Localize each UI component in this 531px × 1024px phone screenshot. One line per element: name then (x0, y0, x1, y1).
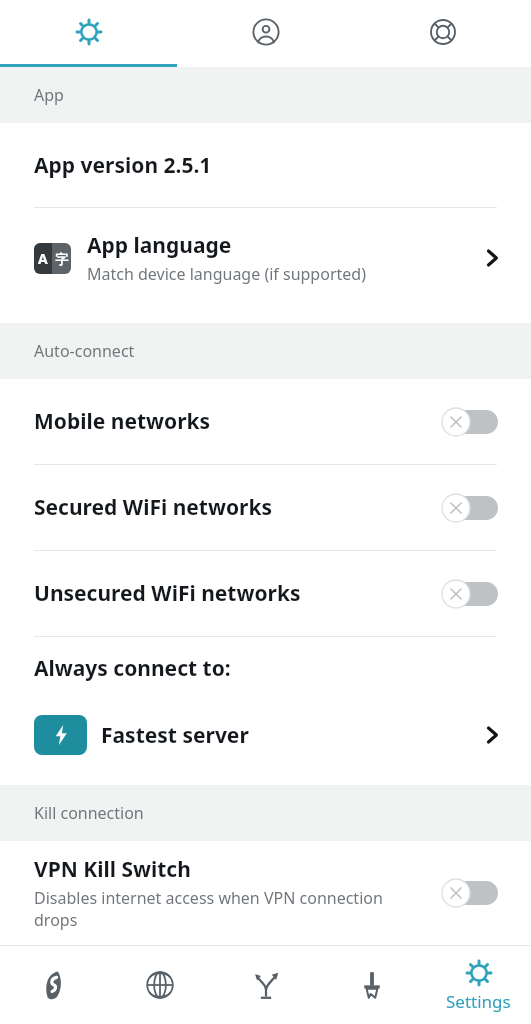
button[interactable]: Mobile networks (0, 379, 531, 464)
staticText: App language (87, 231, 232, 260)
staticText: Kill connection (34, 802, 144, 824)
staticText: Settings (446, 990, 511, 1013)
staticText: Disables internet access when VPN connec… (34, 887, 422, 931)
staticText: Auto-connect (34, 340, 135, 362)
staticText: Fastest server (101, 721, 481, 750)
button[interactable]: Settings tab (0, 0, 177, 64)
button[interactable]: Toggle (442, 879, 498, 907)
staticText: Secured WiFi networks (34, 493, 442, 522)
button[interactable]: App version 2.5.1 (0, 123, 531, 207)
staticText: Always connect to: (34, 654, 231, 683)
staticText: Mobile networks (34, 407, 442, 436)
button[interactable]: Alerts (319, 946, 425, 1024)
button[interactable]: Toggle (442, 408, 498, 436)
button[interactable]: Unsecured WiFi networks (0, 551, 531, 636)
staticText: App version 2.5.1 (34, 151, 212, 180)
staticText: VPN Kill Switch (34, 855, 191, 884)
button[interactable]: VPN Kill Switch (0, 841, 531, 945)
button[interactable]: Fastest server (0, 699, 531, 771)
button[interactable]: Account tab (177, 0, 354, 64)
button[interactable]: Split tunneling (213, 946, 319, 1024)
staticText: A (38, 249, 48, 268)
button[interactable]: A (0, 208, 531, 308)
button[interactable]: Locations (107, 946, 213, 1024)
button[interactable]: Secured WiFi networks (0, 465, 531, 550)
staticText: App (34, 84, 64, 106)
staticText: 字 (55, 251, 68, 267)
button[interactable]: Settings (425, 946, 531, 1024)
staticText: Unsecured WiFi networks (34, 579, 442, 608)
button[interactable]: Toggle (442, 494, 498, 522)
button[interactable]: Toggle (442, 580, 498, 608)
staticText: Match device language (if supported) (87, 263, 366, 285)
button[interactable]: Support tab (354, 0, 531, 64)
button[interactable]: VPN (0, 946, 107, 1024)
